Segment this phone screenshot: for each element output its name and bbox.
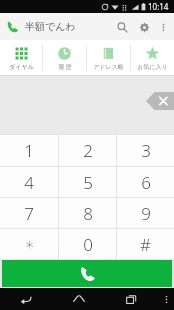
button[interactable]: 2	[59, 135, 116, 166]
staticText: 8	[83, 202, 93, 225]
staticText: ダイヤル	[9, 63, 34, 71]
button[interactable]: More options	[155, 19, 171, 35]
button[interactable]: Back	[0, 288, 52, 310]
staticText: 7	[24, 202, 34, 225]
button[interactable]: Delete	[146, 92, 174, 110]
staticText: お気に入り	[137, 63, 168, 71]
staticText: 履 歴	[58, 63, 72, 71]
button[interactable]: Home	[52, 288, 105, 310]
button[interactable]: 8	[59, 198, 116, 228]
button[interactable]: 履 歴	[43, 40, 86, 76]
button[interactable]: ダイヤル	[0, 40, 42, 76]
button[interactable]: Recent apps	[105, 288, 158, 310]
button[interactable]: アドレス帳	[87, 40, 130, 76]
button[interactable]: Menu	[158, 288, 174, 310]
button[interactable]: 5	[59, 167, 116, 197]
button[interactable]: 6	[117, 167, 174, 197]
button[interactable]: Search	[111, 16, 133, 38]
staticText: 1	[24, 139, 34, 162]
staticText: 10:14	[148, 1, 169, 12]
staticText: 半額でんわ	[25, 20, 76, 33]
staticText: 2	[83, 139, 93, 162]
button[interactable]: 4	[0, 167, 58, 197]
button[interactable]: お気に入り	[131, 40, 174, 76]
button[interactable]: Call	[2, 260, 172, 287]
button[interactable]: #	[117, 229, 174, 259]
button[interactable]: 7	[0, 198, 58, 228]
staticText: アドレス帳	[93, 63, 124, 71]
button[interactable]: Settings	[133, 16, 155, 38]
button[interactable]: 3	[117, 135, 174, 166]
staticText: 9	[141, 202, 151, 225]
staticText: ∗	[24, 234, 35, 254]
button[interactable]: 0	[59, 229, 116, 259]
staticText: 4	[24, 171, 34, 194]
staticText: 0	[83, 233, 93, 256]
button[interactable]: 1	[0, 135, 58, 166]
staticText: #	[140, 233, 151, 256]
button[interactable]: ∗	[0, 229, 58, 259]
staticText: 3	[141, 139, 151, 162]
staticText: 6	[141, 171, 151, 194]
button[interactable]: 9	[117, 198, 174, 228]
staticText: 5	[83, 171, 93, 194]
